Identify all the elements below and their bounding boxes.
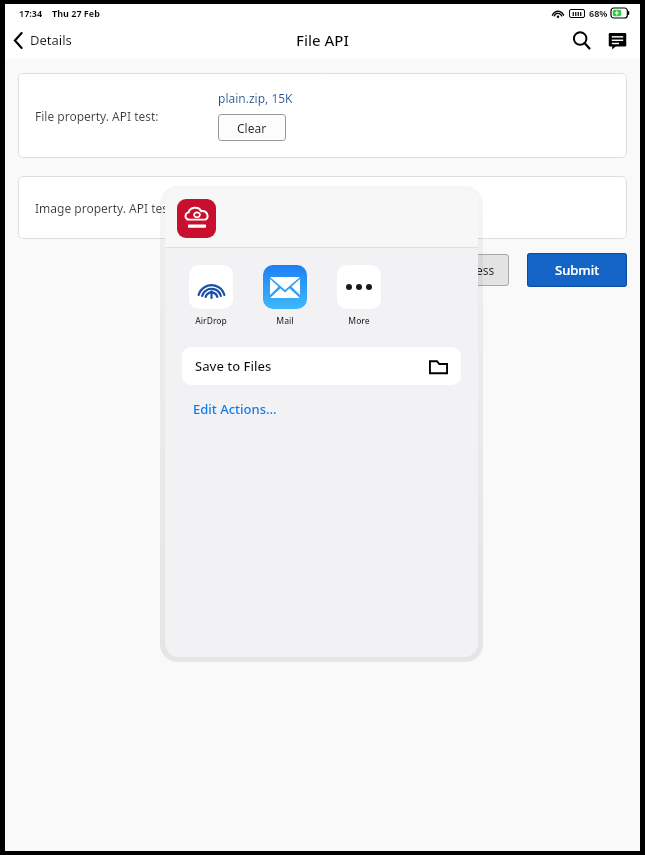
staticText: plain.zip, 15K (218, 90, 293, 106)
button[interactable]: Comments (602, 25, 632, 55)
staticText: Submit (555, 261, 600, 279)
button[interactable]: Details (5, 27, 80, 53)
button[interactable]: Oracle app (177, 199, 216, 238)
staticText: Thu 27 Feb (52, 7, 100, 19)
button[interactable]: Edit Actions... (193, 397, 277, 421)
staticText: Edit Actions... (193, 400, 277, 418)
button[interactable]: Save to Files (182, 347, 461, 385)
staticText: File API (296, 30, 349, 50)
staticText: Image property. API test: (35, 200, 176, 216)
staticText: 68% (589, 7, 608, 19)
staticText: AirDrop (195, 315, 227, 327)
staticText: More (348, 315, 370, 327)
staticText: 17:34 (19, 7, 43, 19)
staticText: Clear (237, 120, 267, 136)
button[interactable]: Process (437, 254, 509, 286)
button[interactable]: More (333, 264, 385, 327)
staticText: Mail (276, 315, 294, 327)
staticText: Save to Files (195, 357, 272, 375)
staticText: File property. API test: (35, 108, 159, 124)
button[interactable]: Submit (527, 253, 627, 287)
button[interactable]: Clear (218, 114, 286, 141)
button[interactable]: Search (566, 25, 596, 55)
button[interactable]: AirDrop (185, 264, 237, 327)
staticText: Details (30, 31, 72, 49)
button[interactable]: Mail (259, 264, 311, 327)
staticText: Process (451, 262, 495, 278)
